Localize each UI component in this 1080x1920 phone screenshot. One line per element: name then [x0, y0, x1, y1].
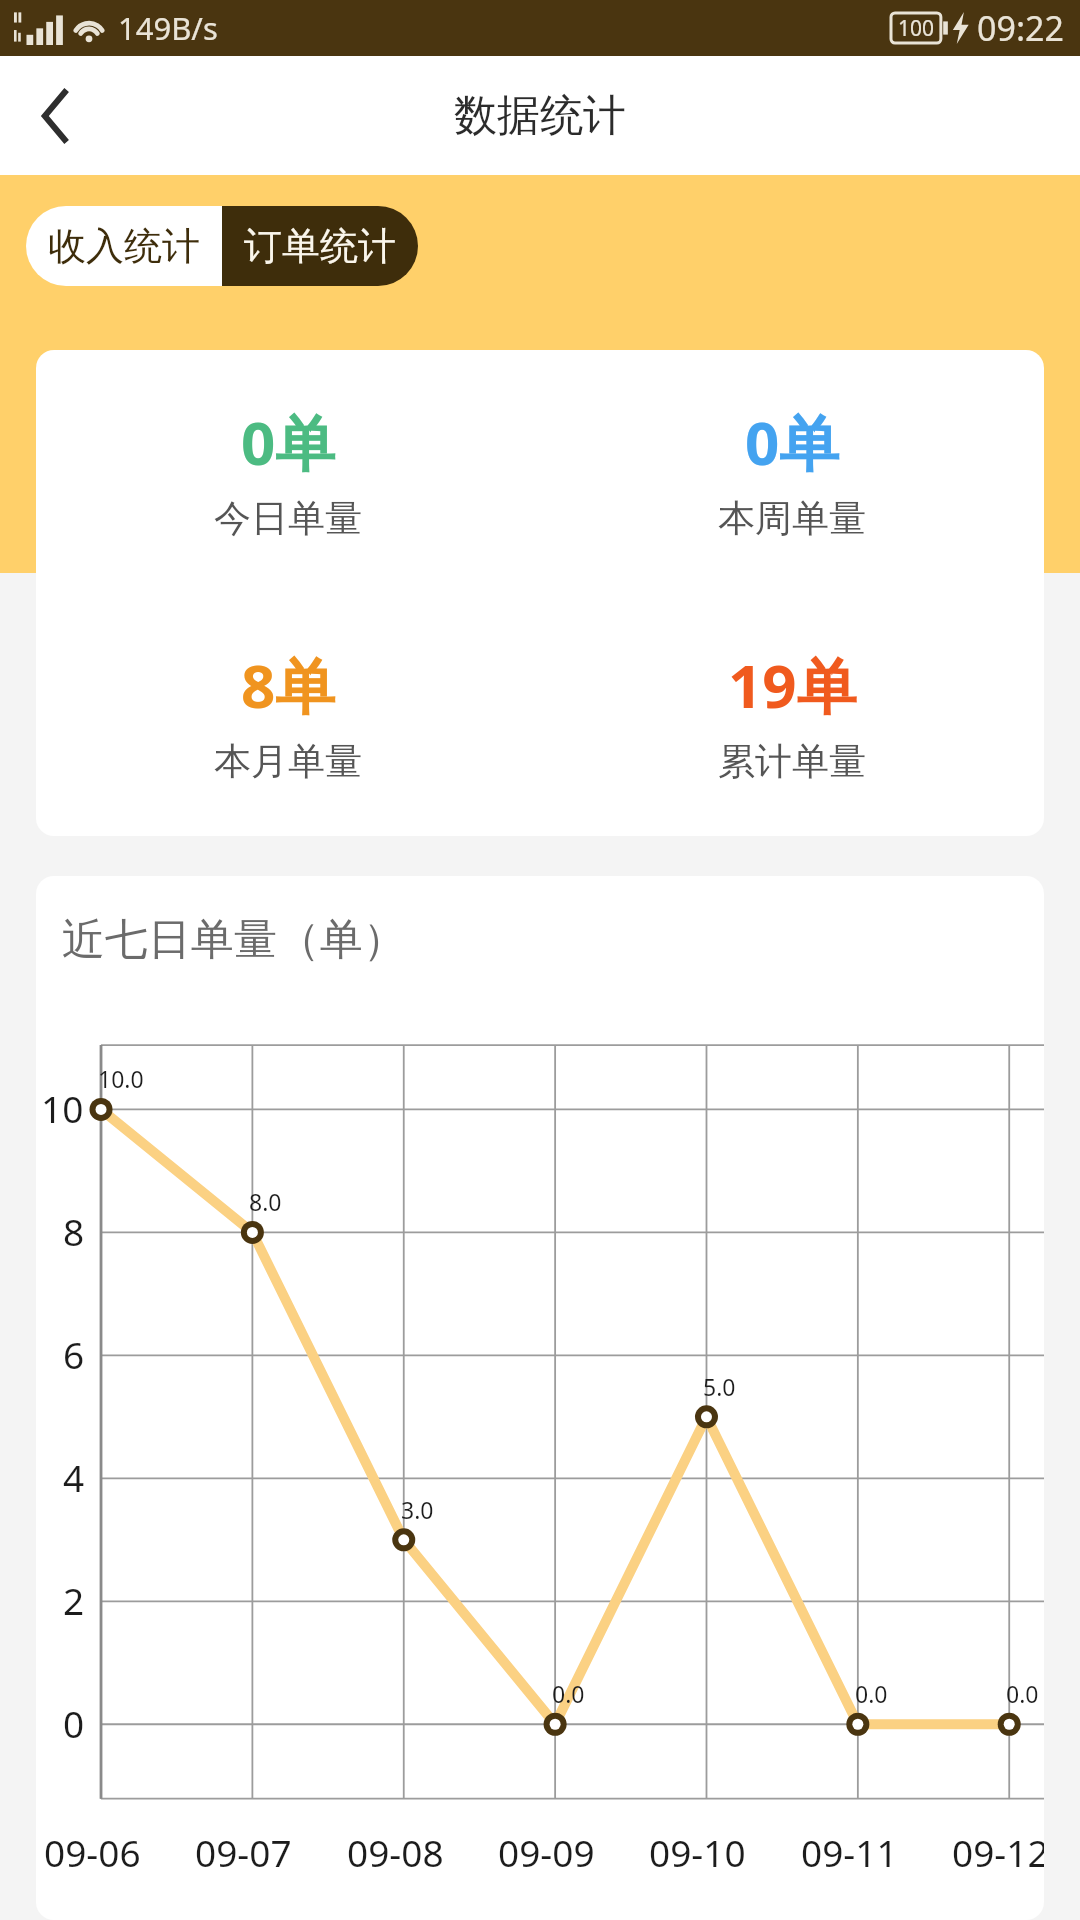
- staticText: 09-11: [801, 1827, 898, 1877]
- button[interactable]: 19单: [540, 593, 1044, 836]
- staticText: 19单: [728, 644, 857, 726]
- button[interactable]: Back: [0, 60, 112, 172]
- staticText: 5.0: [703, 1371, 736, 1402]
- staticText: 10: [41, 1083, 84, 1133]
- staticText: 10.0: [98, 1063, 144, 1094]
- staticText: 09-10: [649, 1827, 746, 1877]
- button[interactable]: 0单: [540, 350, 1044, 593]
- staticText: 09-12: [952, 1827, 1044, 1877]
- staticText: 100: [898, 14, 935, 43]
- staticText: 8: [63, 1206, 85, 1256]
- staticText: 6: [63, 1329, 85, 1379]
- staticText: 累计单量: [718, 738, 866, 785]
- staticText: 09-06: [44, 1827, 141, 1877]
- button[interactable]: 8单: [36, 593, 540, 836]
- staticText: 本月单量: [214, 738, 362, 785]
- staticText: 近七日单量（单）: [62, 913, 406, 967]
- button[interactable]: 0单: [36, 350, 540, 593]
- staticText: 09-08: [347, 1827, 444, 1877]
- button[interactable]: 订单统计: [222, 206, 418, 286]
- staticText: 0.0: [1006, 1678, 1039, 1709]
- staticText: 149B/s: [118, 7, 218, 49]
- staticText: 8.0: [249, 1186, 282, 1217]
- staticText: 0.0: [552, 1678, 585, 1709]
- staticText: 2: [63, 1575, 85, 1625]
- button[interactable]: 收入统计: [26, 206, 222, 286]
- staticText: 0单: [745, 401, 840, 483]
- staticText: 8单: [241, 644, 336, 726]
- staticText: 0.0: [855, 1678, 888, 1709]
- staticText: 数据统计: [454, 89, 626, 143]
- staticText: 今日单量: [214, 495, 362, 542]
- staticText: 0: [63, 1698, 85, 1748]
- staticText: 订单统计: [244, 222, 396, 270]
- staticText: 本周单量: [718, 495, 866, 542]
- staticText: 09:22: [977, 5, 1064, 51]
- staticText: 09-07: [195, 1827, 292, 1877]
- staticText: 收入统计: [48, 222, 200, 270]
- staticText: 09-09: [498, 1827, 595, 1877]
- staticText: 3.0: [401, 1494, 434, 1525]
- staticText: 0单: [241, 401, 336, 483]
- staticText: 4: [63, 1452, 85, 1502]
